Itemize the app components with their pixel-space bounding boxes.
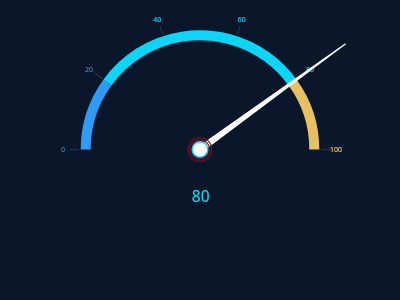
- button[interactable]: Speed gauge, 80 of 100: [0, 0, 400, 300]
